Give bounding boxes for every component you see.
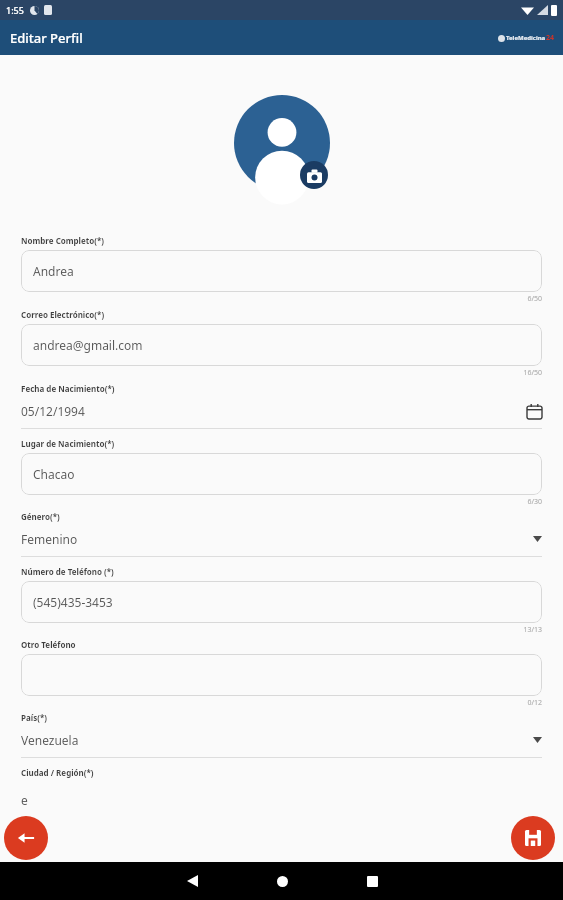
staticText: 6/50 bbox=[21, 294, 542, 304]
button[interactable]: Home bbox=[260, 862, 304, 900]
staticText: Otro Teléfono bbox=[21, 639, 76, 650]
staticText: TeleMedicina bbox=[506, 34, 546, 42]
staticText: País(*) bbox=[21, 712, 47, 723]
staticText: 16/50 bbox=[21, 368, 542, 378]
staticText: Ciudad / Región(*) bbox=[21, 767, 94, 778]
staticText: 13/13 bbox=[21, 625, 542, 635]
staticText: Venezuela bbox=[21, 732, 533, 748]
staticText: 0/12 bbox=[21, 698, 542, 708]
staticText: Femenino bbox=[21, 531, 533, 547]
staticText: Fecha de Nacimiento(*) bbox=[21, 383, 115, 394]
button[interactable]: Andrea bbox=[21, 250, 542, 292]
button[interactable]: Change photo bbox=[300, 161, 328, 189]
staticText: (545)435-3453 bbox=[33, 594, 113, 610]
button[interactable]: Back bbox=[4, 816, 48, 860]
button[interactable]: Chacao bbox=[21, 453, 542, 495]
button[interactable]: Venezuela bbox=[21, 727, 542, 758]
button[interactable]: Femenino bbox=[21, 526, 542, 557]
staticText: Andrea bbox=[33, 263, 74, 279]
staticText: Lugar de Nacimiento(*) bbox=[21, 438, 115, 449]
staticText: andrea@gmail.com bbox=[33, 337, 143, 353]
staticText: Editar Perfil bbox=[10, 29, 83, 47]
button[interactable] bbox=[21, 654, 542, 696]
staticText: 24 bbox=[546, 33, 555, 43]
button[interactable]: Recents bbox=[350, 862, 394, 900]
button[interactable]: 05/12/1994 bbox=[21, 398, 542, 429]
button[interactable]: (545)435-3453 bbox=[21, 581, 542, 623]
staticText: Género(*) bbox=[21, 511, 60, 522]
button[interactable]: Back bbox=[170, 862, 214, 900]
staticText: Chacao bbox=[33, 466, 75, 482]
button[interactable]: andrea@gmail.com bbox=[21, 324, 542, 366]
button[interactable]: Save bbox=[511, 816, 555, 860]
staticText: 05/12/1994 bbox=[21, 403, 527, 419]
staticText: Correo Electrónico(*) bbox=[21, 309, 105, 320]
staticText: Número de Teléfono (*) bbox=[21, 566, 114, 577]
staticText: e bbox=[21, 792, 28, 808]
staticText: Nombre Completo(*) bbox=[21, 235, 105, 246]
staticText: 6/30 bbox=[21, 497, 542, 507]
staticText: 1:55 bbox=[6, 4, 24, 16]
